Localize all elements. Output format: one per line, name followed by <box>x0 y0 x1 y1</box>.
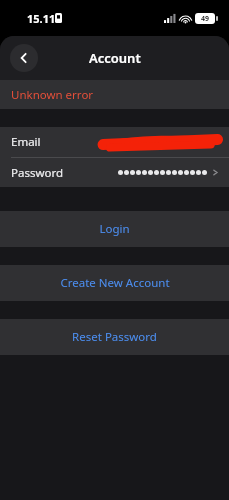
staticText: Create New Account <box>60 275 170 291</box>
staticText: Unknown error <box>11 87 94 103</box>
button[interactable]: Password <box>0 158 229 187</box>
button[interactable]: Login <box>0 211 229 247</box>
button[interactable]: Create New Account <box>0 265 229 301</box>
staticText: 49 <box>201 14 210 24</box>
staticText: •••••••••••m <box>156 135 207 149</box>
staticText: Email <box>11 134 41 150</box>
button[interactable]: Email <box>0 127 229 157</box>
staticText: Login <box>99 221 130 237</box>
staticText: Account <box>89 49 141 67</box>
button[interactable]: Reset Password <box>0 319 229 355</box>
button[interactable]: Back <box>10 44 38 72</box>
staticText: 15.11 <box>27 11 56 26</box>
staticText: Password <box>11 165 64 181</box>
staticText: Reset Password <box>72 329 157 345</box>
